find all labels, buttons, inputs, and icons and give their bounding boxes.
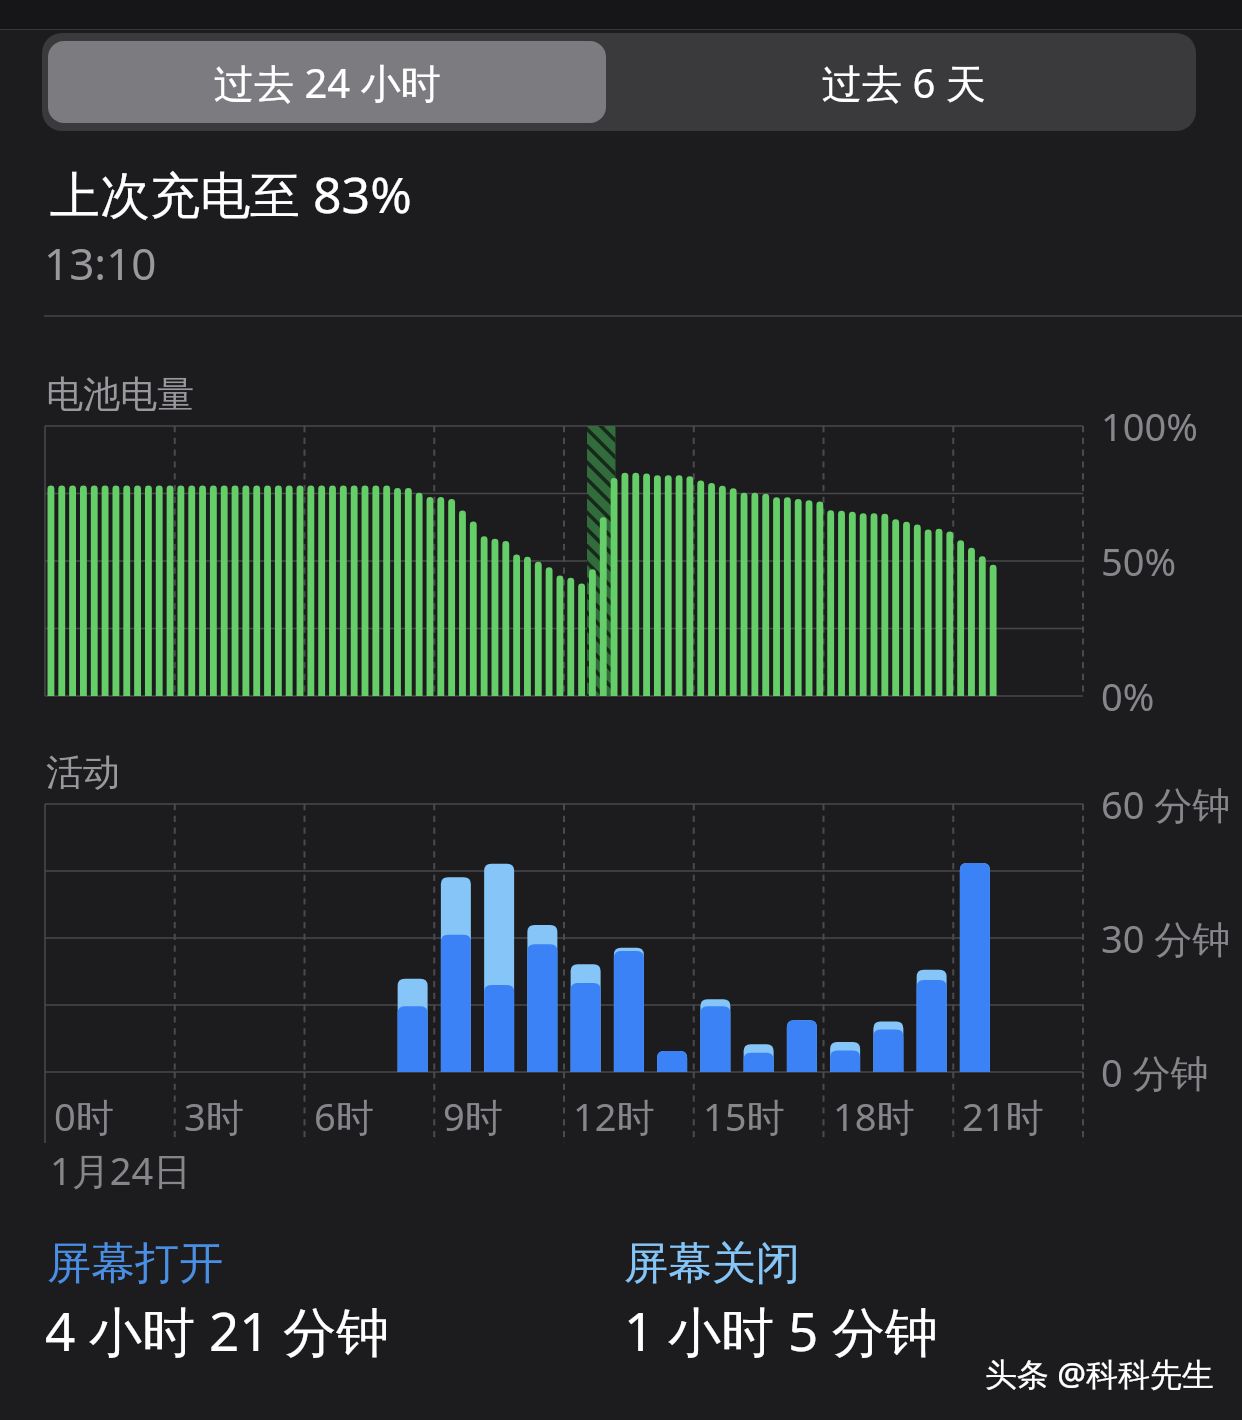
staticText: 屏幕关闭 — [624, 1236, 800, 1291]
staticText: 头条 @科科先生 — [985, 1352, 1215, 1396]
staticText: 60 分钟 — [1101, 778, 1231, 830]
staticText: 4 小时 21 分钟 — [45, 1294, 390, 1366]
staticText: 6时 — [314, 1090, 374, 1142]
staticText: 上次充电至 83% — [50, 160, 412, 228]
staticText: 12时 — [573, 1090, 655, 1142]
staticText: 9时 — [443, 1090, 503, 1142]
staticText: 50% — [1101, 535, 1177, 587]
staticText: 活动 — [46, 749, 120, 796]
staticText: 0% — [1101, 670, 1155, 722]
button[interactable]: 过去 24 小时 — [48, 41, 606, 123]
staticText: 0时 — [54, 1090, 114, 1142]
staticText: 电池电量 — [46, 371, 194, 418]
staticText: 过去 6 天 — [822, 55, 986, 110]
staticText: 过去 24 小时 — [214, 55, 441, 110]
staticText: 3时 — [184, 1090, 244, 1142]
button[interactable]: 屏幕关闭 — [617, 1228, 1177, 1358]
staticText: 18时 — [833, 1090, 915, 1142]
staticText: 1 小时 5 分钟 — [624, 1294, 938, 1366]
staticText: 30 分钟 — [1101, 912, 1231, 964]
staticText: 100% — [1101, 400, 1198, 452]
button[interactable]: 过去 6 天 — [612, 33, 1196, 131]
staticText: 13:10 — [44, 233, 157, 293]
staticText: 15时 — [703, 1090, 785, 1142]
button[interactable]: 屏幕打开 — [40, 1228, 600, 1358]
staticText: 屏幕打开 — [47, 1236, 223, 1291]
staticText: 21时 — [962, 1090, 1044, 1142]
staticText: 0 分钟 — [1101, 1046, 1209, 1098]
staticText: 1月24日 — [50, 1144, 192, 1196]
